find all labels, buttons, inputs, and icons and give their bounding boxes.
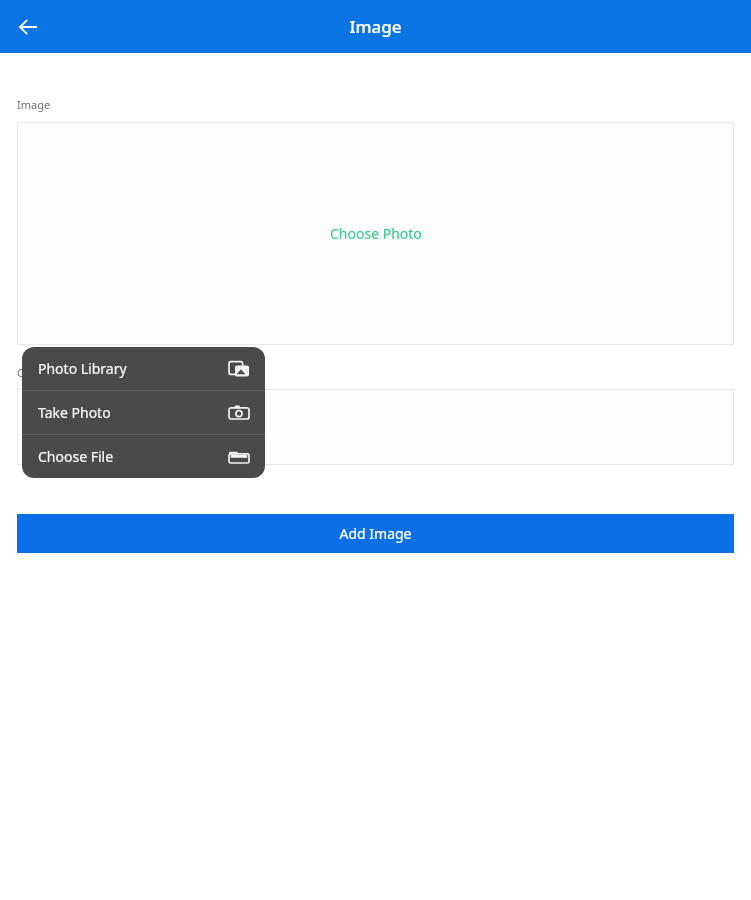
button[interactable]: Take Photo [22,391,265,434]
staticText: Image [17,97,51,112]
button[interactable]: Choose Photo [17,122,734,345]
staticText: Image [349,15,402,38]
button[interactable]: Photo Library [22,347,265,390]
staticText: Caption [17,365,58,380]
button[interactable]: Back [8,7,48,47]
button[interactable]: Choose File [22,435,265,478]
staticText: Choose Photo [330,224,422,243]
staticText: Take Photo [38,403,229,422]
button[interactable]: Add Image [17,514,734,553]
staticText: Add Image [339,524,412,543]
staticText: Photo Library [38,359,229,378]
button[interactable] [17,389,734,465]
staticText: Choose File [38,447,229,466]
